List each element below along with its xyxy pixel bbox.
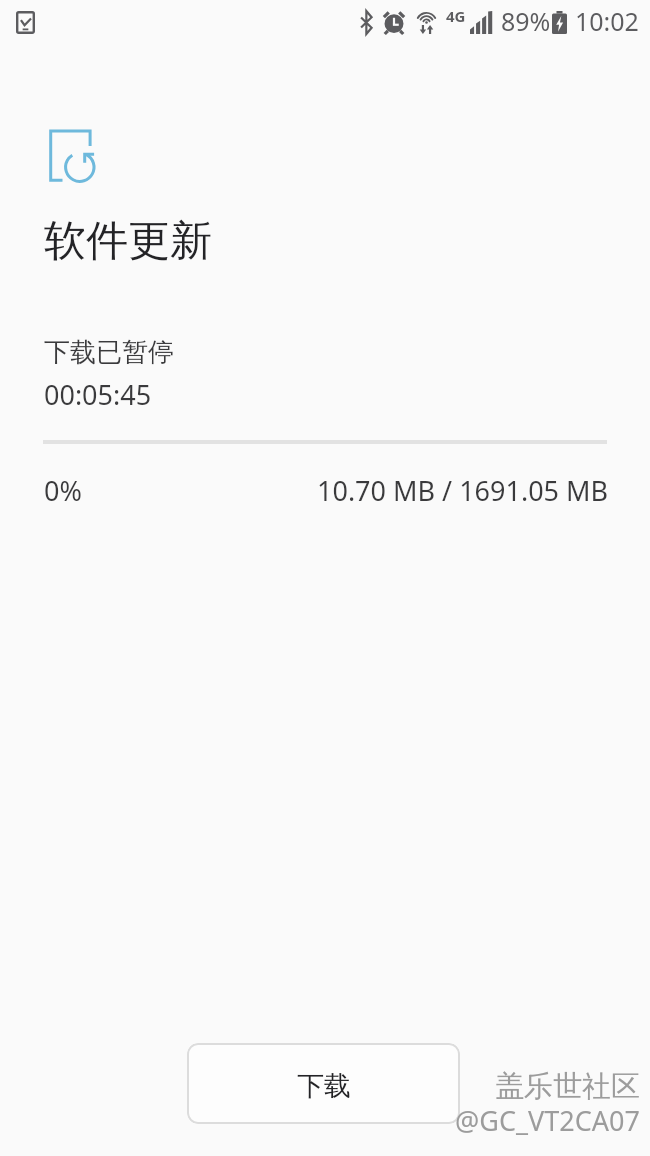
staticText: 10:02 (575, 4, 639, 38)
staticText: 下载 (297, 1069, 351, 1103)
staticText: 10.70 MB / 1691.05 MB (317, 472, 609, 509)
staticText: 软件更新 (44, 215, 212, 268)
staticText: 00:05:45 (44, 376, 152, 413)
staticText: 4G (446, 6, 466, 26)
staticText: 盖乐世社区 (495, 1068, 640, 1105)
other: Wi-Fi connected (416, 9, 437, 34)
staticText: 下载已暂停 (44, 336, 174, 369)
other: Battery charging (552, 11, 567, 34)
other: Software update (44, 125, 100, 187)
other: Alarm set (383, 11, 405, 34)
staticText: 0% (44, 472, 82, 509)
other: Mobile signal strength (470, 11, 494, 34)
other: Software update notification (16, 11, 35, 34)
staticText: @GC_VT2CA07 (455, 1102, 640, 1139)
button[interactable]: 下载 (187, 1043, 460, 1124)
staticText: 89% (501, 4, 551, 38)
other: Bluetooth on (359, 11, 374, 34)
